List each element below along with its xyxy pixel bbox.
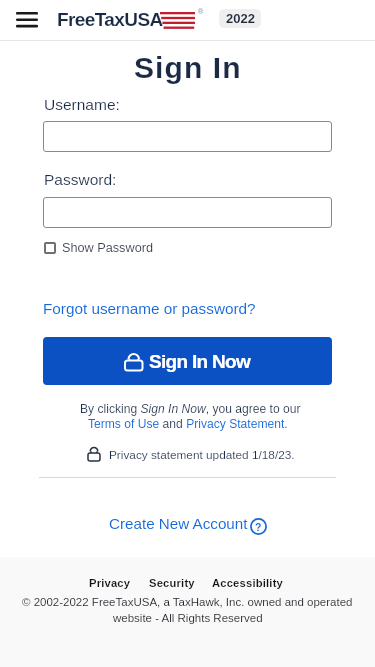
staticText: © 2002-2022 FreeTaxUSA, a TaxHawk, Inc. … xyxy=(22,596,353,609)
button[interactable]: Show Password xyxy=(44,241,153,255)
button[interactable]: Terms of Use and Privacy Statement. xyxy=(88,417,288,431)
button[interactable]: 2022 xyxy=(219,9,261,28)
button[interactable] xyxy=(43,197,332,228)
staticText: Create New Account xyxy=(109,515,248,532)
button[interactable]: Security xyxy=(149,577,195,590)
button[interactable]: Accessibility xyxy=(212,577,284,590)
staticText: By clicking Sign In Now, you agree to ou… xyxy=(80,402,301,416)
staticText: ® xyxy=(198,8,204,16)
button[interactable] xyxy=(16,12,38,28)
staticText: 2022 xyxy=(226,11,255,26)
button[interactable]: Sign In Now xyxy=(43,337,332,385)
button[interactable]: Privacy xyxy=(89,577,131,590)
staticText: Show Password xyxy=(62,241,153,255)
staticText: Sign In xyxy=(134,51,242,85)
button[interactable]: Forgot username or password? xyxy=(43,300,256,317)
staticText: Sign In Now xyxy=(149,351,251,372)
staticText: Password: xyxy=(44,171,117,188)
staticText: ? xyxy=(255,521,262,533)
button[interactable]: Create New Account xyxy=(0,515,375,532)
staticText: Username: xyxy=(44,96,120,113)
button[interactable] xyxy=(43,121,332,152)
button[interactable]: FreeTaxUSA xyxy=(57,9,163,30)
staticText: website - All Rights Reserved xyxy=(113,612,263,625)
staticText: Privacy statement updated 1/18/23. xyxy=(109,448,295,461)
